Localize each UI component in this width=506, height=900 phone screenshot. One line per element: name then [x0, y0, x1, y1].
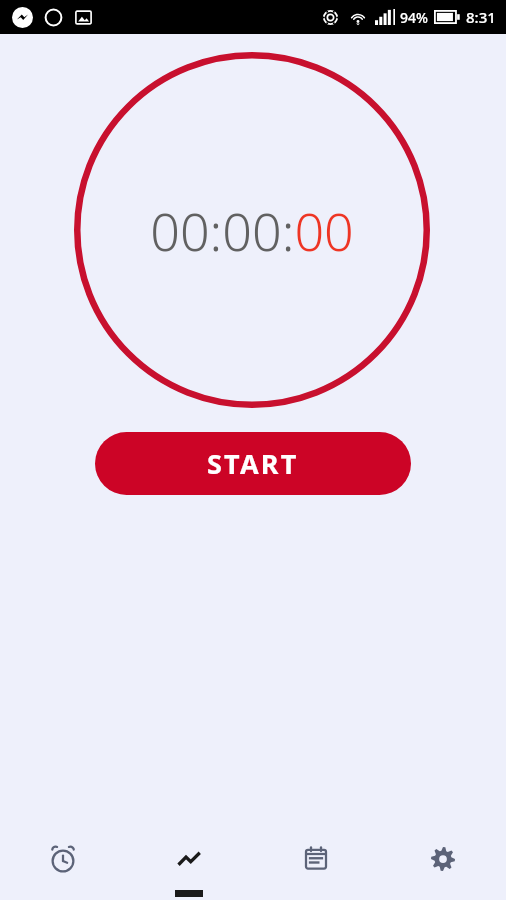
- button[interactable]: START: [95, 432, 411, 495]
- button[interactable]: Records: [252, 820, 379, 900]
- staticText: 8:31: [466, 7, 496, 27]
- staticText: 00:00:00: [150, 195, 354, 266]
- button[interactable]: Settings: [379, 820, 506, 900]
- button[interactable]: Stopwatch: [126, 820, 252, 900]
- staticText: 94%: [400, 8, 428, 27]
- button[interactable]: Alarm: [0, 820, 126, 900]
- staticText: START: [207, 445, 299, 482]
